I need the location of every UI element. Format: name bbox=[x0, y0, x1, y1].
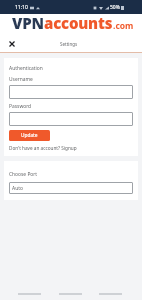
staticText: Authentication bbox=[9, 65, 43, 72]
staticText: Username bbox=[9, 76, 33, 83]
staticText: Settings bbox=[60, 41, 78, 47]
button[interactable] bbox=[9, 85, 133, 99]
button[interactable]: Auto bbox=[9, 182, 133, 194]
staticText: Auto bbox=[12, 185, 23, 192]
staticText: 11:10 bbox=[15, 4, 28, 11]
button[interactable]: Update bbox=[9, 130, 50, 141]
staticText: VPN bbox=[12, 13, 44, 33]
button[interactable] bbox=[9, 112, 133, 126]
staticText: Choose Port bbox=[9, 171, 38, 178]
staticText: 50% bbox=[110, 4, 120, 11]
staticText: .com bbox=[113, 20, 134, 32]
staticText: Password bbox=[9, 103, 32, 110]
staticText: accounts bbox=[44, 13, 113, 33]
button[interactable]: Don't have an account? Signup bbox=[9, 145, 77, 151]
button[interactable]: Close bbox=[5, 37, 19, 51]
staticText: Update bbox=[21, 132, 38, 139]
